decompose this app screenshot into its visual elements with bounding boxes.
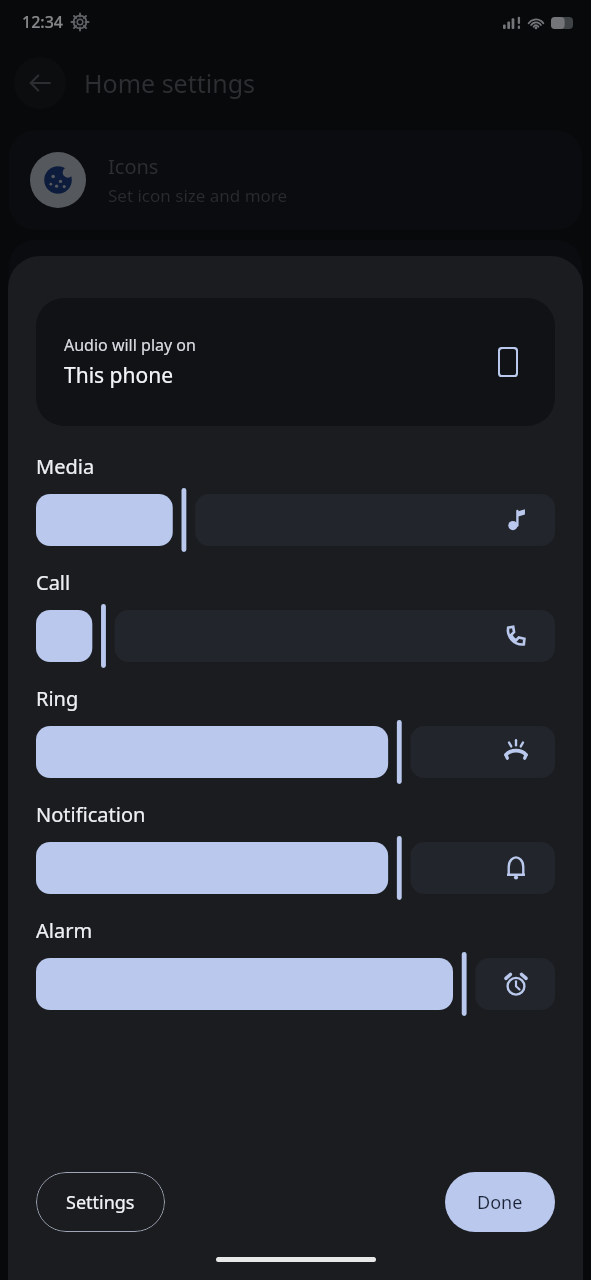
staticText: Alarm [36,917,93,944]
button[interactable]: Settings [36,1172,165,1232]
button[interactable]: Media volume [36,488,555,552]
button[interactable]: Call volume [36,604,555,668]
button[interactable]: Icons [9,130,582,230]
staticText: Notification [36,801,146,828]
button[interactable]: Back [14,57,66,109]
staticText: Settings [66,1190,135,1215]
staticText: Icons [108,153,159,180]
staticText: This phone [64,361,174,390]
staticText: 12:34 [22,11,63,33]
button[interactable]: Ring volume [36,720,555,784]
other: Output device [491,345,525,379]
staticText: Media [36,453,95,480]
button[interactable]: Alarm volume [36,952,555,1016]
staticText: Done [477,1190,523,1215]
staticText: Home settings [84,66,256,100]
staticText: Ring [36,685,79,712]
staticText: Set icon size and more [108,184,288,207]
button[interactable]: Notification volume [36,836,555,900]
staticText: Audio will play on [64,334,196,356]
button[interactable]: Done [445,1172,555,1232]
button[interactable]: Audio will play on [36,298,555,426]
staticText: Call [36,569,71,596]
